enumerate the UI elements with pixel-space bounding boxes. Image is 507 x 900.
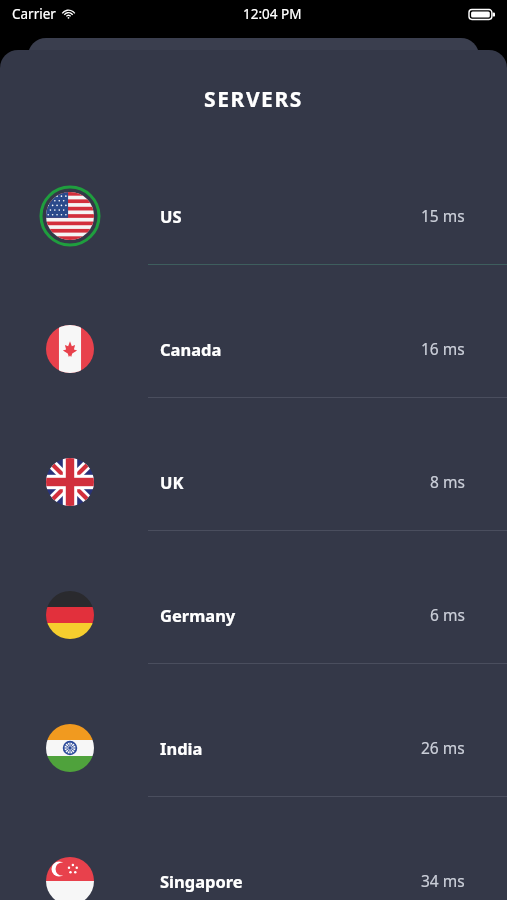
button[interactable]: Canada: [0, 283, 507, 416]
staticText: Germany: [160, 604, 236, 626]
staticText: Carrier: [12, 5, 56, 23]
button[interactable]: Singapore: [0, 815, 507, 900]
staticText: India: [160, 737, 203, 759]
staticText: 16 ms: [421, 338, 465, 359]
staticText: 26 ms: [421, 737, 465, 758]
staticText: US: [160, 205, 182, 227]
button[interactable]: Germany: [0, 549, 507, 682]
staticText: 12:04 PM: [243, 5, 302, 23]
staticText: Singapore: [160, 870, 243, 892]
button[interactable]: US: [0, 150, 507, 283]
staticText: 6 ms: [430, 604, 465, 625]
staticText: UK: [160, 471, 184, 493]
staticText: 34 ms: [421, 870, 465, 891]
button[interactable]: UK: [0, 416, 507, 549]
staticText: SERVERS: [0, 85, 507, 114]
staticText: 8 ms: [430, 471, 465, 492]
button[interactable]: India: [0, 682, 507, 815]
staticText: Canada: [160, 338, 222, 360]
staticText: 15 ms: [421, 205, 465, 226]
